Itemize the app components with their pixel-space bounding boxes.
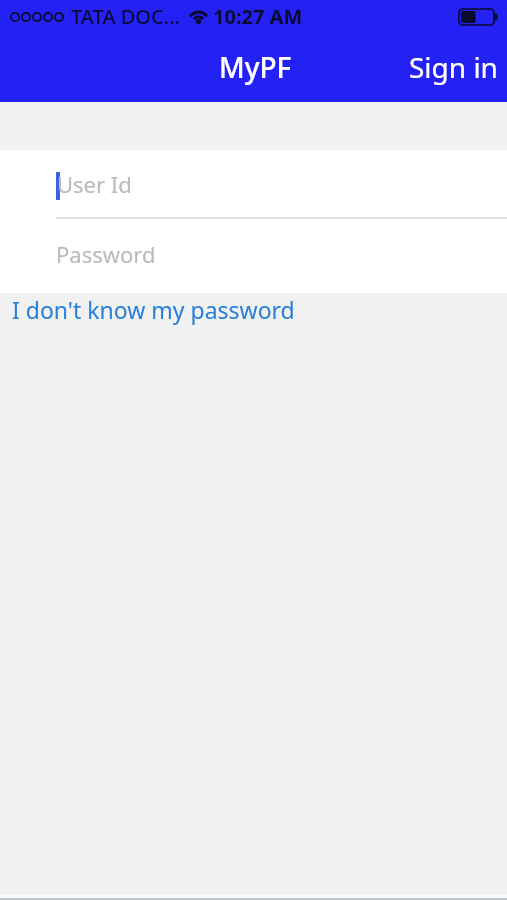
staticText: MyPF xyxy=(219,48,292,86)
staticText: TATA DOC... xyxy=(71,3,180,30)
button[interactable]: Sign in xyxy=(397,40,507,94)
other: Signal, Wi-Fi and battery status xyxy=(0,0,507,36)
button[interactable]: I don't know my password xyxy=(0,293,308,335)
staticText: User Id xyxy=(57,169,132,199)
staticText: I don't know my password xyxy=(12,294,295,325)
button[interactable]: User Id xyxy=(0,150,507,219)
staticText: Password xyxy=(56,239,156,269)
button[interactable]: Password xyxy=(0,219,507,293)
staticText: Sign in xyxy=(409,48,498,86)
staticText: 10:27 AM xyxy=(213,3,303,30)
